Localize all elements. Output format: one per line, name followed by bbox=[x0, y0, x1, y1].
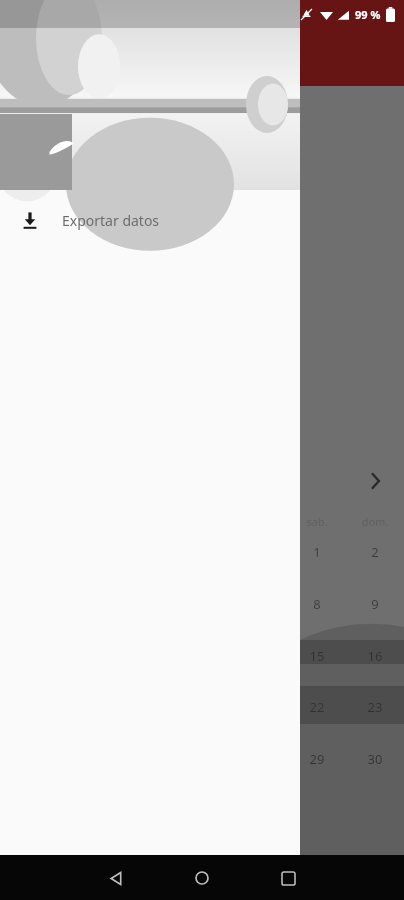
staticText: 16 bbox=[346, 647, 404, 665]
staticText: 22 bbox=[288, 698, 346, 716]
staticText: Exportar datos bbox=[62, 211, 160, 230]
button[interactable]: Next month bbox=[358, 464, 392, 498]
staticText: 8 bbox=[288, 595, 346, 613]
staticText: 15 bbox=[288, 647, 346, 665]
staticText: 2025 bbox=[170, 181, 303, 260]
staticText: 9 bbox=[346, 595, 404, 613]
staticText: 30 bbox=[346, 750, 404, 768]
staticText: 29 bbox=[288, 750, 346, 768]
staticText: 12:20 bbox=[24, 6, 55, 22]
button[interactable]: Exportar datos bbox=[0, 196, 300, 244]
button[interactable]: Back bbox=[96, 858, 136, 898]
staticText: 23 bbox=[346, 698, 404, 716]
staticText: sab. bbox=[288, 514, 346, 529]
staticText: 1 bbox=[288, 543, 346, 561]
button[interactable]: Recent apps bbox=[268, 858, 308, 898]
staticText: 99 % bbox=[355, 7, 381, 22]
button[interactable]: Home bbox=[182, 858, 222, 898]
staticText: 2 bbox=[346, 543, 404, 561]
